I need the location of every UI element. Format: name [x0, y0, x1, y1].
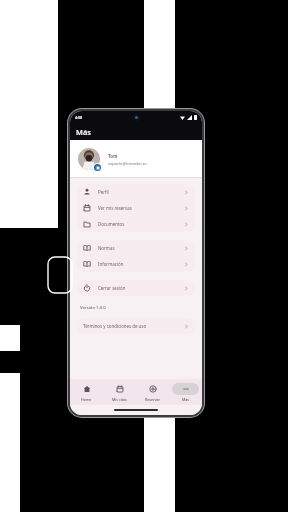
button[interactable]: Perfil: [77, 184, 195, 200]
button[interactable]: Mis citas: [103, 379, 136, 405]
staticText: Más: [76, 127, 91, 137]
staticText: soporte@timeebo.es: [108, 161, 148, 166]
staticText: Documentos: [98, 221, 184, 227]
button[interactable]: Reservar: [136, 379, 169, 405]
staticText: Ver mis reservas: [98, 205, 184, 211]
staticText: Toni: [108, 153, 118, 159]
staticText: Términos y condiciones de uso: [83, 323, 184, 329]
staticText: Mis citas: [112, 397, 127, 402]
button[interactable]: Cerrar sesión: [77, 280, 195, 296]
staticText: Información: [98, 261, 184, 267]
button[interactable]: Home: [70, 379, 103, 405]
staticText: Normas: [98, 245, 184, 251]
staticText: Más: [182, 397, 190, 402]
staticText: Home: [81, 397, 92, 402]
staticText: Perfil: [98, 189, 184, 195]
button[interactable]: Ver mis reservas: [77, 200, 195, 216]
staticText: Reservar: [145, 397, 161, 402]
button[interactable]: Toni: [70, 140, 202, 178]
button[interactable]: Normas: [77, 240, 195, 256]
staticText: Cerrar sesión: [98, 285, 184, 291]
button[interactable]: Más: [169, 379, 202, 405]
staticText: Versión 1.0.0: [80, 305, 106, 311]
staticText: 4:08: [75, 115, 83, 120]
button[interactable]: Términos y condiciones de uso: [77, 318, 195, 334]
button[interactable]: Información: [77, 256, 195, 272]
button[interactable]: Documentos: [77, 216, 195, 232]
